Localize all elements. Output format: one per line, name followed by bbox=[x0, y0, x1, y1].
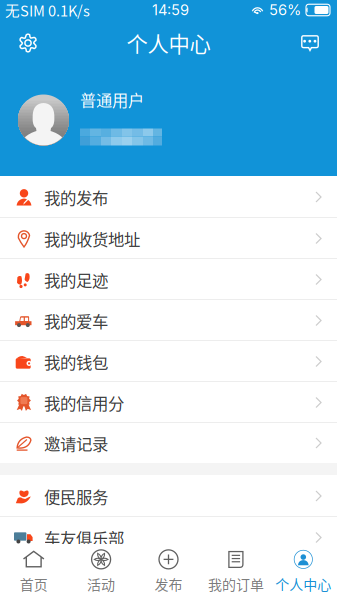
button[interactable]: 个人中心 bbox=[270, 544, 337, 600]
staticText: 活动 bbox=[87, 574, 115, 594]
staticText: 56% bbox=[269, 1, 301, 19]
staticText: 车友俱乐部 bbox=[44, 526, 124, 549]
button[interactable]: 车友俱乐部 bbox=[0, 517, 337, 558]
button[interactable]: 首页 bbox=[0, 544, 67, 600]
staticText: 首页 bbox=[20, 574, 48, 594]
button[interactable]: 活动 bbox=[67, 544, 135, 600]
staticText: 邀请记录 bbox=[44, 431, 108, 455]
button[interactable]: 我的信用分 bbox=[0, 382, 337, 423]
staticText: 无SIM 0.1K/s bbox=[5, 0, 90, 21]
staticText: 个人中心 bbox=[275, 574, 331, 594]
staticText: 我的钱包 bbox=[44, 350, 108, 373]
staticText: 我的订单 bbox=[208, 574, 264, 594]
staticText: 14:59 bbox=[152, 1, 189, 19]
button[interactable]: 我的爱车 bbox=[0, 300, 337, 341]
button[interactable]: 我的订单 bbox=[202, 544, 270, 600]
button[interactable]: 发布 bbox=[135, 544, 202, 600]
staticText: 我的信用分 bbox=[44, 391, 124, 414]
staticText: 普通用户 bbox=[80, 88, 144, 111]
staticText: 我的收货地址 bbox=[44, 227, 140, 250]
button[interactable]: 我的收货地址 bbox=[0, 218, 337, 259]
button[interactable]: 邀请记录 bbox=[0, 423, 337, 463]
staticText: 便民服务 bbox=[44, 484, 108, 508]
button[interactable]: 我的发布 bbox=[0, 176, 337, 218]
staticText: 我的发布 bbox=[44, 185, 108, 209]
staticText: 我的足迹 bbox=[44, 268, 108, 291]
staticText: 个人中心 bbox=[126, 28, 210, 58]
button[interactable]: 我的足迹 bbox=[0, 259, 337, 300]
button[interactable]: 消息 bbox=[287, 20, 333, 66]
button[interactable]: 我的钱包 bbox=[0, 341, 337, 382]
button[interactable]: 设置 bbox=[5, 20, 51, 66]
button[interactable]: 便民服务 bbox=[0, 475, 337, 517]
staticText: 发布 bbox=[154, 574, 182, 594]
staticText: 我的爱车 bbox=[44, 309, 108, 332]
